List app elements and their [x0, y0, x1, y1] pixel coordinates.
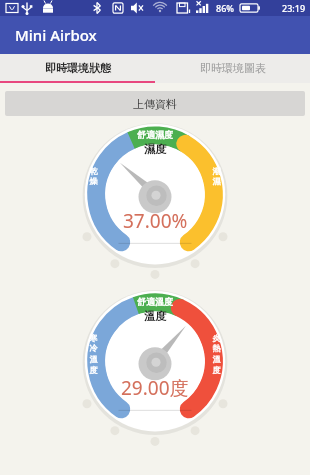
staticText: 乾燥 [89, 166, 98, 186]
staticText: 濕度 [144, 142, 166, 156]
staticText: 37.00% [123, 208, 188, 234]
staticText: 寒冷溫度 [89, 333, 98, 375]
staticText: 23:19 [282, 2, 306, 14]
staticText: 即時環境圖表 [200, 61, 266, 75]
staticText: Mini Airbox [15, 25, 97, 45]
staticText: 29.00度 [121, 375, 189, 401]
staticText: 86% [216, 2, 234, 14]
staticText: 即時環境狀態 [45, 61, 111, 75]
staticText: 炎熱溫度 [212, 333, 221, 375]
button[interactable]: 即時環境狀態 [0, 54, 155, 81]
staticText: 潮濕 [212, 166, 221, 186]
button[interactable]: 即時環境圖表 [155, 54, 310, 81]
staticText: 舒適溫度 [137, 296, 173, 307]
button[interactable]: 上傳資料 [5, 91, 305, 116]
staticText: 溫度 [144, 309, 166, 323]
staticText: 上傳資料 [133, 97, 177, 111]
staticText: 舒適濕度 [137, 129, 173, 140]
